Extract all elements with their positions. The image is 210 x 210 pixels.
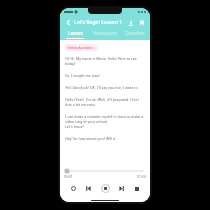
staticText: Lesson (68, 30, 83, 36)
staticText: Let's Begin Lesson 1 (74, 19, 125, 26)
button[interactable]: Back (63, 17, 73, 27)
button[interactable]: Pause (99, 182, 112, 195)
staticText: 00:01 (64, 174, 73, 179)
staticText: Hi! Hi. My name is Maria. Hello! Nice to… (65, 56, 145, 66)
staticText: Hello! Yeah, I'm ok. Well, it'll prepare… (65, 97, 145, 107)
button[interactable]: Repeat (68, 183, 79, 194)
staticText: Let's move! (65, 124, 84, 129)
button[interactable]: Lesson (60, 29, 90, 40)
button[interactable]: Seek (64, 168, 146, 174)
staticText: Introduction › (68, 45, 95, 50)
button[interactable]: Introduction › (65, 44, 98, 51)
button[interactable]: Vocabulary (90, 29, 120, 40)
button[interactable]: Question (120, 29, 150, 40)
button[interactable]: Next (116, 183, 127, 194)
button[interactable]: Previous (83, 183, 94, 194)
staticText: Yes! Good job! OK, I'll say you too, I w… (65, 85, 138, 90)
button[interactable]: Bookmark (136, 17, 147, 28)
staticText: 01:54 (137, 174, 146, 179)
staticText: Question (125, 30, 145, 36)
staticText: I can make a mistake myself in class to … (65, 114, 145, 124)
staticText: Hey! So how about you? Will it (65, 136, 116, 141)
staticText: Vocabulary (93, 30, 117, 36)
button[interactable]: Download (125, 17, 136, 28)
staticText: So, I taught me now! (65, 73, 100, 78)
button[interactable]: Stop (131, 183, 142, 194)
